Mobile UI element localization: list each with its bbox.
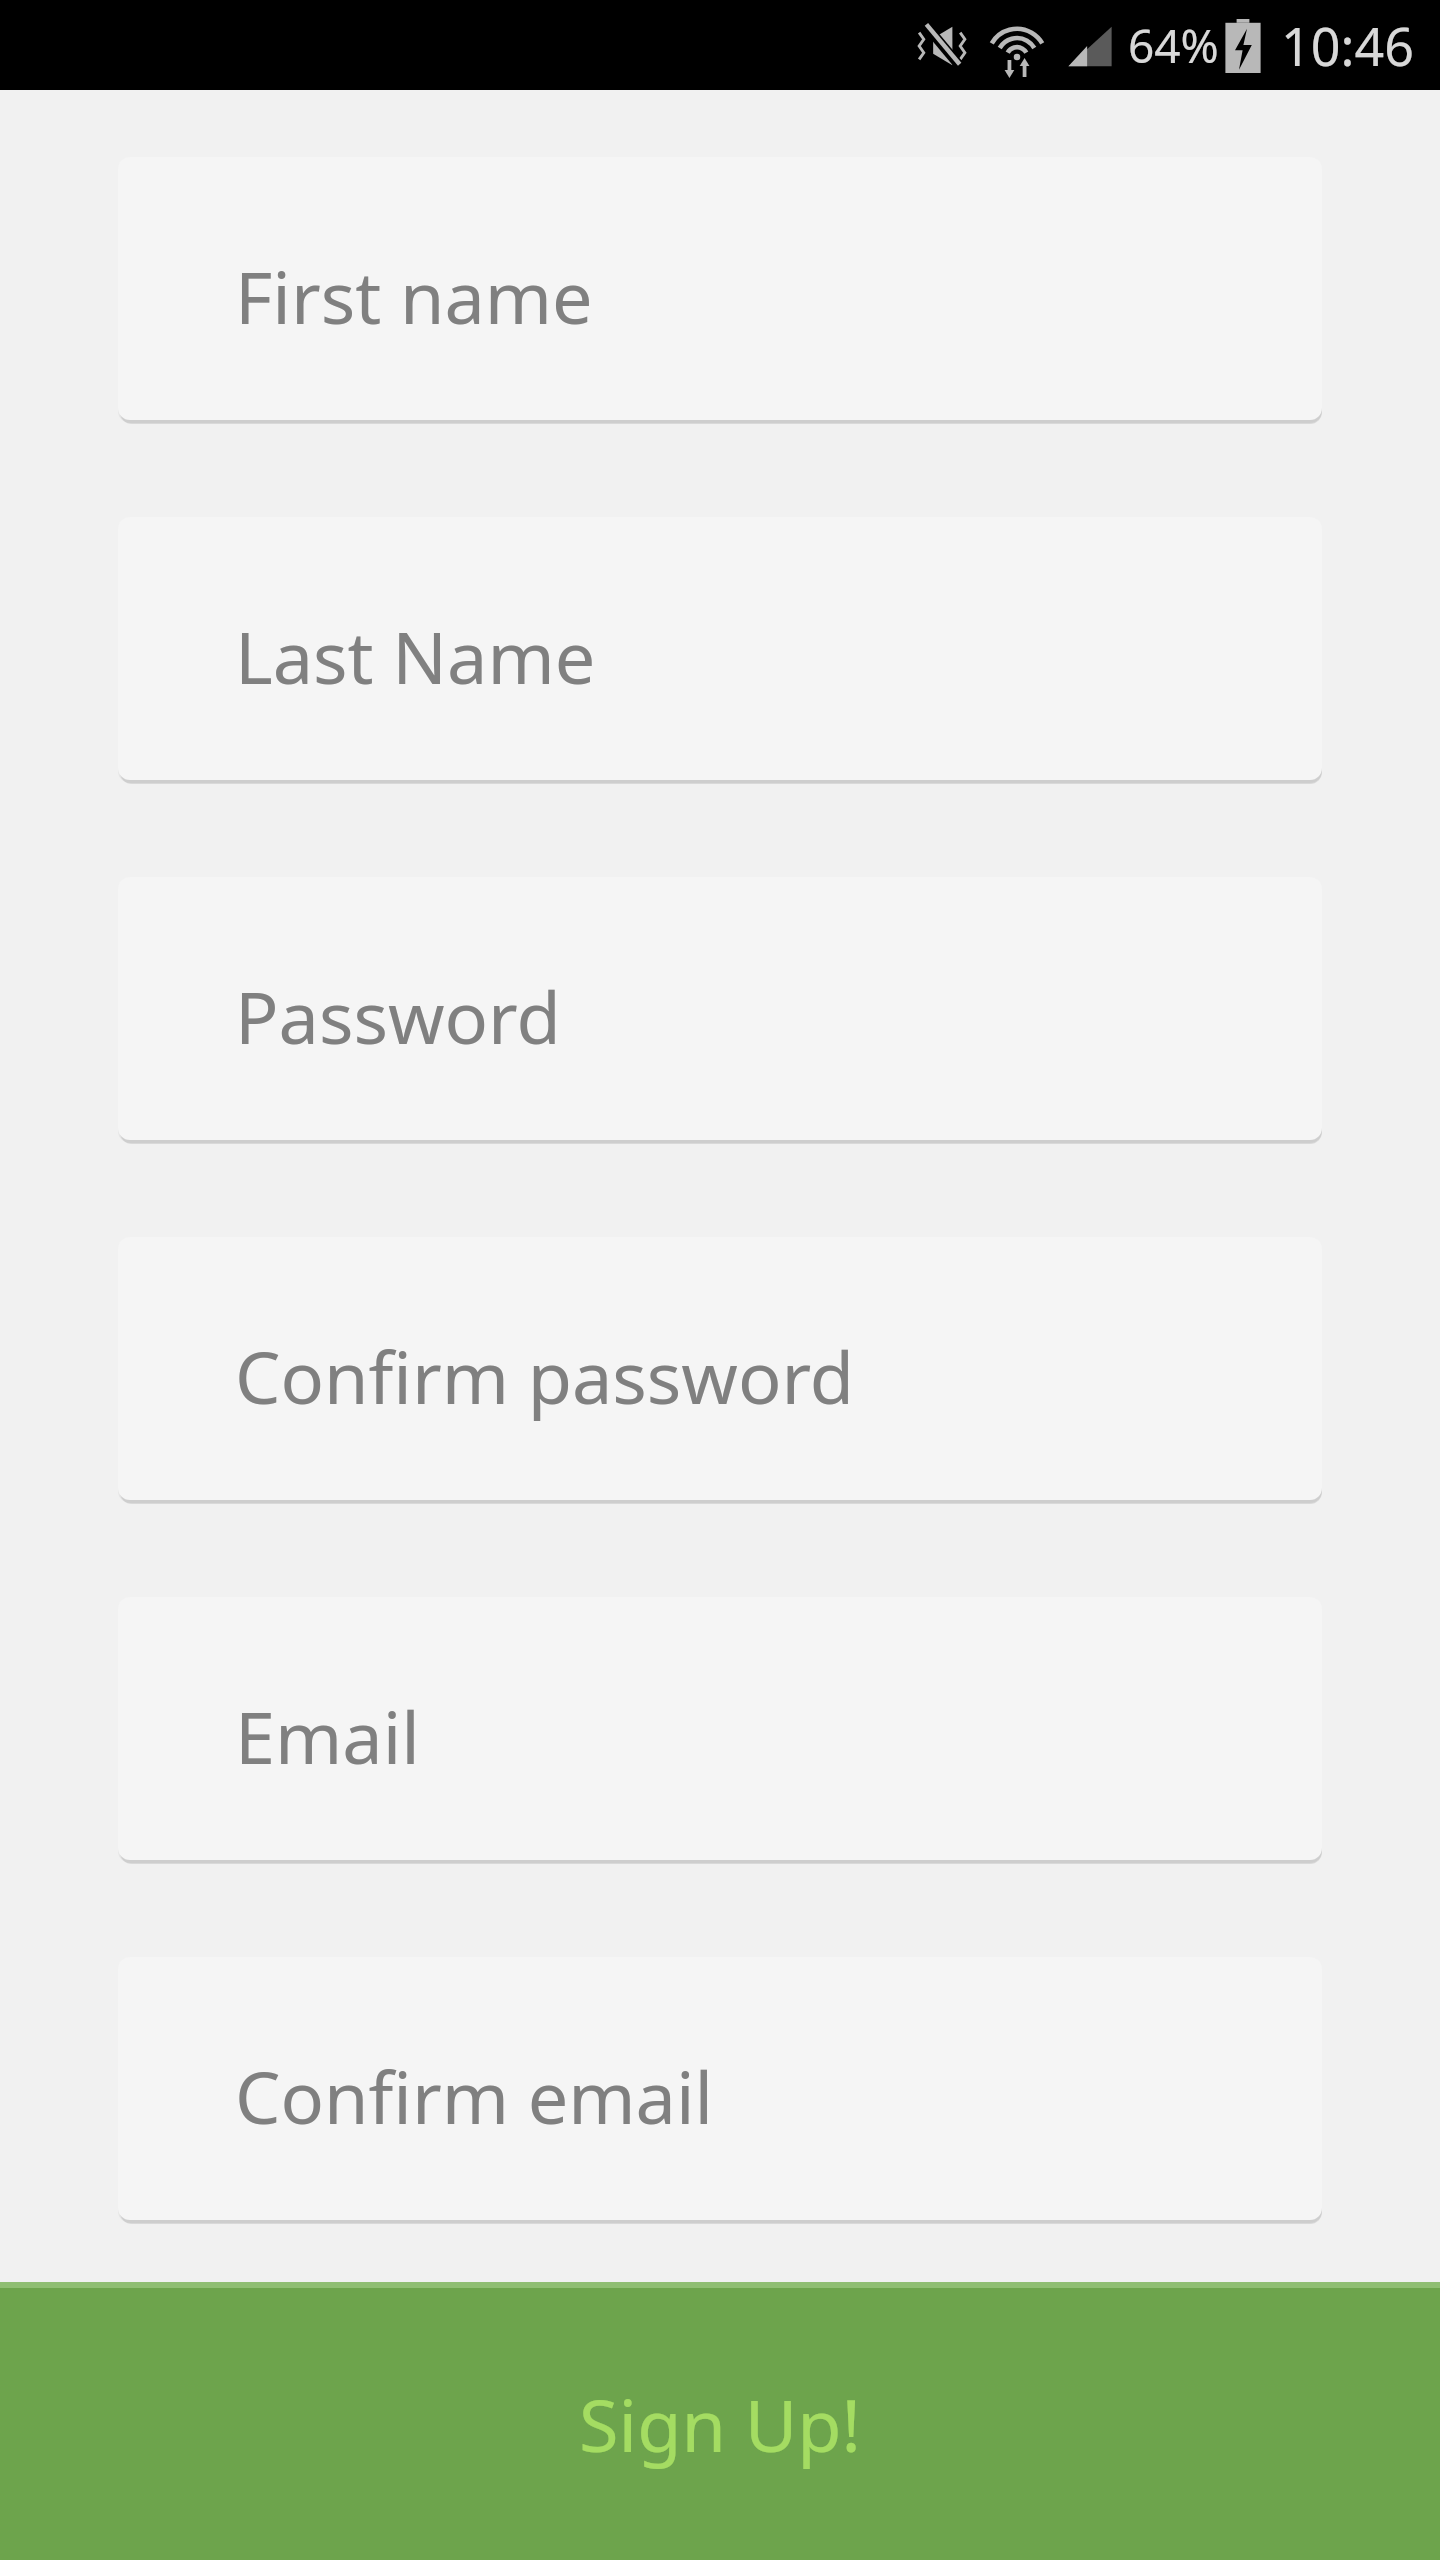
staticText: Confirm email: [235, 2047, 714, 2145]
staticText: Confirm password: [235, 1327, 855, 1425]
staticText: 64%: [1128, 14, 1219, 77]
button[interactable]: Password: [118, 877, 1322, 1140]
staticText: Password: [235, 967, 561, 1065]
button[interactable]: Email: [118, 1597, 1322, 1860]
button[interactable]: Sign Up!: [0, 2282, 1440, 2560]
staticText: Sign Up!: [579, 2375, 861, 2473]
button[interactable]: Confirm password: [118, 1237, 1322, 1500]
button[interactable]: First name: [118, 157, 1322, 420]
staticText: 10:46: [1281, 10, 1414, 81]
staticText: Email: [235, 1687, 420, 1785]
staticText: Last Name: [235, 607, 596, 705]
staticText: First name: [235, 247, 593, 345]
button[interactable]: Last Name: [118, 517, 1322, 780]
button[interactable]: Confirm email: [118, 1957, 1322, 2220]
